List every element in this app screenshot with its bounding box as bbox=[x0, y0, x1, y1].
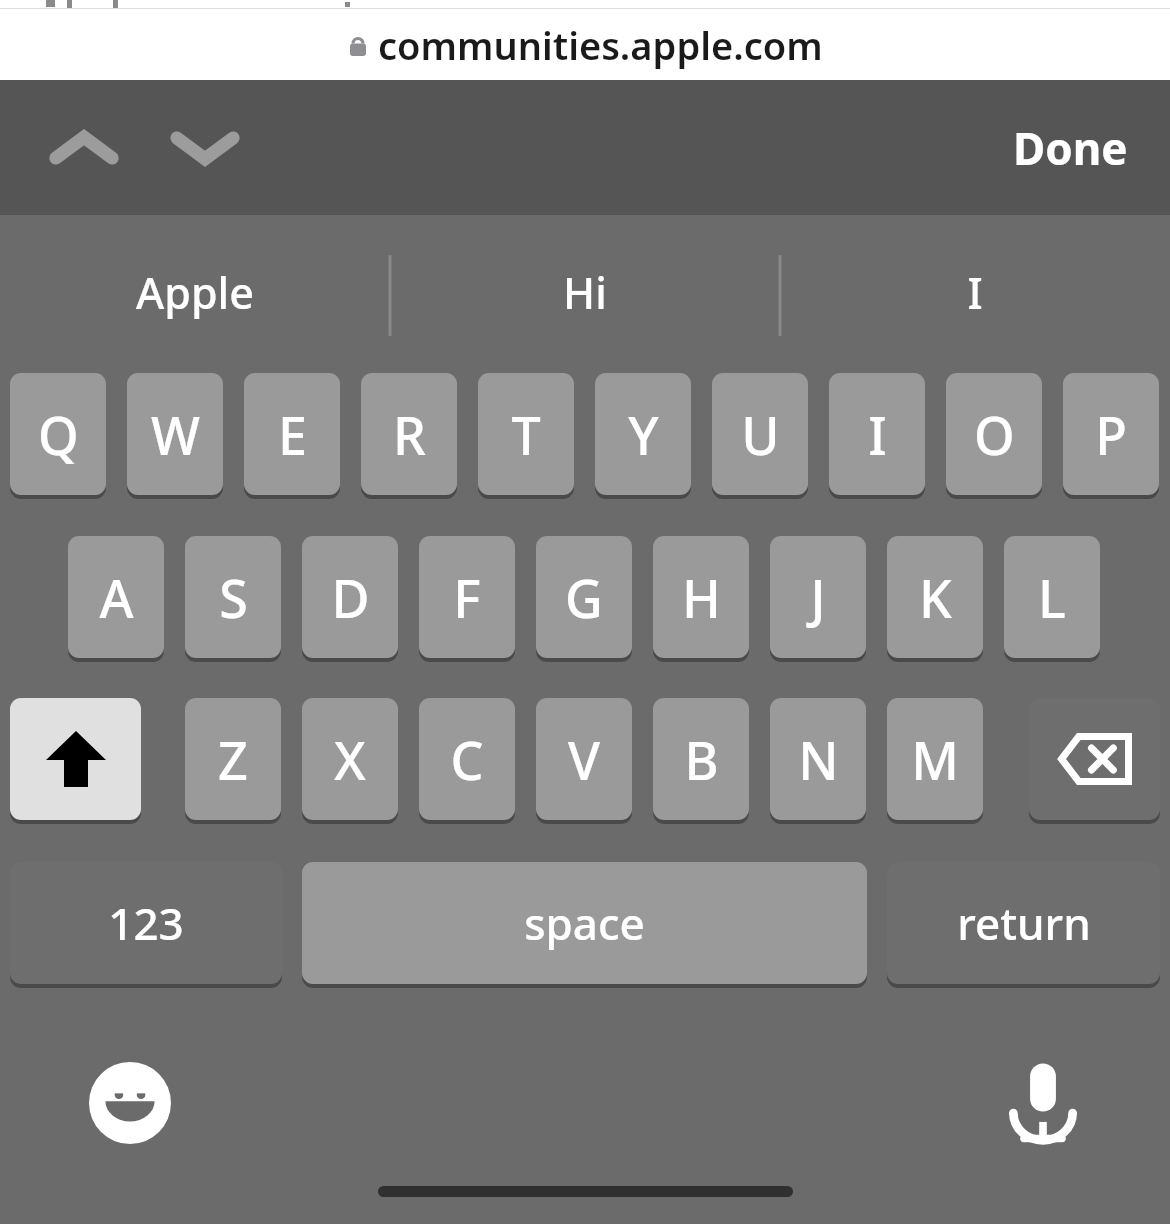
button[interactable]: Hi bbox=[390, 215, 780, 370]
button[interactable]: communities.apple.com bbox=[0, 9, 1170, 80]
staticText: E bbox=[278, 399, 307, 470]
button[interactable]: 123 bbox=[10, 862, 282, 984]
button[interactable]: P bbox=[1063, 373, 1159, 495]
button[interactable]: Y bbox=[595, 373, 691, 495]
button[interactable]: Shift bbox=[10, 698, 141, 820]
button[interactable]: U bbox=[712, 373, 808, 495]
staticText: L bbox=[1038, 562, 1066, 633]
staticText: space bbox=[524, 893, 645, 953]
button[interactable]: A bbox=[68, 536, 164, 658]
staticText: U bbox=[741, 399, 780, 470]
button[interactable]: V bbox=[536, 698, 632, 820]
button[interactable]: F bbox=[419, 536, 515, 658]
button[interactable]: I bbox=[780, 215, 1170, 370]
staticText: K bbox=[919, 562, 952, 633]
staticText: Hi bbox=[563, 263, 607, 322]
button[interactable]: Z bbox=[185, 698, 281, 820]
staticText: G bbox=[565, 562, 603, 633]
staticText: return bbox=[957, 893, 1091, 953]
button[interactable]: B bbox=[653, 698, 749, 820]
button[interactable]: W bbox=[127, 373, 223, 495]
button[interactable]: Next field bbox=[155, 108, 255, 188]
button[interactable]: H bbox=[653, 536, 749, 658]
staticText: A bbox=[99, 562, 134, 633]
button[interactable]: K bbox=[887, 536, 983, 658]
button[interactable]: space bbox=[302, 862, 867, 984]
staticText: I bbox=[868, 399, 887, 470]
staticText: M bbox=[911, 724, 959, 795]
staticText: T bbox=[511, 399, 541, 470]
button[interactable]: E bbox=[244, 373, 340, 495]
staticText: communities.apple.com bbox=[378, 19, 823, 71]
button[interactable]: L bbox=[1004, 536, 1100, 658]
button[interactable]: M bbox=[887, 698, 983, 820]
button[interactable]: G bbox=[536, 536, 632, 658]
staticText: X bbox=[334, 724, 366, 795]
staticText: J bbox=[810, 562, 826, 633]
staticText: H bbox=[682, 562, 721, 633]
staticText: C bbox=[450, 724, 484, 795]
button[interactable]: J bbox=[770, 536, 866, 658]
button[interactable]: C bbox=[419, 698, 515, 820]
staticText: V bbox=[568, 724, 600, 795]
button[interactable]: S bbox=[185, 536, 281, 658]
button[interactable]: X bbox=[302, 698, 398, 820]
staticText: N bbox=[798, 724, 839, 795]
button[interactable]: Done bbox=[990, 103, 1150, 193]
button[interactable]: T bbox=[478, 373, 574, 495]
staticText: D bbox=[331, 562, 370, 633]
button[interactable]: Q bbox=[10, 373, 106, 495]
button[interactable]: return bbox=[887, 862, 1160, 984]
staticText: S bbox=[219, 562, 248, 633]
button[interactable]: Backspace bbox=[1029, 698, 1160, 820]
button[interactable]: O bbox=[946, 373, 1042, 495]
button[interactable]: I bbox=[829, 373, 925, 495]
button[interactable]: N bbox=[770, 698, 866, 820]
button[interactable]: D bbox=[302, 536, 398, 658]
button[interactable]: Dictation bbox=[995, 1055, 1091, 1151]
staticText: Z bbox=[218, 724, 248, 795]
button[interactable]: R bbox=[361, 373, 457, 495]
staticText: Y bbox=[628, 399, 659, 470]
staticText: Done bbox=[1013, 118, 1128, 178]
staticText: O bbox=[974, 399, 1015, 470]
staticText: P bbox=[1095, 399, 1127, 470]
button[interactable]: Apple bbox=[0, 215, 390, 370]
button[interactable]: Emoji bbox=[82, 1055, 178, 1151]
staticText: F bbox=[453, 562, 481, 633]
staticText: 123 bbox=[108, 893, 184, 953]
staticText: Apple bbox=[136, 263, 254, 322]
staticText: Q bbox=[38, 399, 79, 470]
staticText: I bbox=[967, 263, 983, 322]
staticText: W bbox=[151, 399, 200, 470]
staticText: B bbox=[684, 724, 719, 795]
button[interactable]: Previous field bbox=[34, 108, 134, 188]
staticText: R bbox=[393, 399, 426, 470]
